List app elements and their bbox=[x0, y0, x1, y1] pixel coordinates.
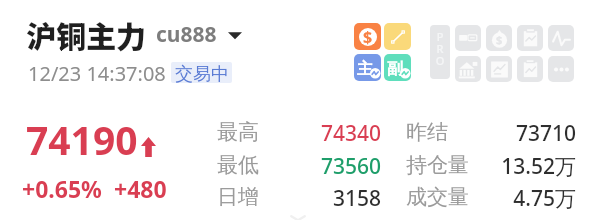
button[interactable]: Money flow bbox=[486, 25, 512, 51]
staticText: 最低 bbox=[217, 152, 259, 178]
staticText: 成交量 bbox=[406, 184, 469, 210]
button[interactable]: Funds bbox=[354, 23, 381, 50]
button[interactable]: Switch contract bbox=[225, 25, 245, 45]
button[interactable]: Main contract bbox=[354, 54, 381, 81]
staticText: 13.52万 bbox=[406, 152, 576, 181]
staticText: 昨结 bbox=[406, 119, 448, 145]
staticText: 持仓量 bbox=[406, 152, 469, 178]
staticText: 最高 bbox=[217, 119, 259, 145]
button[interactable]: Analysis bbox=[486, 56, 512, 82]
staticText: P bbox=[430, 29, 450, 44]
staticText: 主 bbox=[357, 59, 373, 79]
button[interactable]: PRO bbox=[430, 25, 450, 79]
staticText: 副 bbox=[387, 59, 403, 79]
button[interactable]: Sub contract bbox=[384, 54, 411, 81]
button[interactable]: More bbox=[548, 56, 574, 82]
button[interactable]: 交易中 bbox=[171, 62, 232, 83]
staticText: $ bbox=[496, 32, 503, 47]
staticText: R bbox=[430, 41, 450, 56]
staticText: O bbox=[430, 53, 450, 68]
staticText: 74190 bbox=[26, 113, 138, 166]
staticText: 74340 bbox=[217, 119, 381, 148]
staticText: 3158 bbox=[217, 184, 381, 213]
button[interactable]: Trend line bbox=[384, 23, 411, 50]
staticText: $ bbox=[363, 26, 373, 46]
staticText: 4.75万 bbox=[406, 184, 576, 213]
staticText: +480 bbox=[114, 173, 167, 204]
button[interactable]: Institutions bbox=[455, 56, 481, 82]
staticText: 12/23 14:37:08 bbox=[28, 60, 166, 87]
staticText: 73710 bbox=[406, 119, 576, 148]
staticText: 交易中 bbox=[175, 63, 229, 83]
button[interactable]: News chart bbox=[517, 56, 543, 82]
staticText: cu888 bbox=[156, 20, 217, 49]
staticText: 日增 bbox=[217, 184, 259, 210]
staticText: 73560 bbox=[217, 152, 381, 181]
staticText: +0.65% bbox=[22, 173, 102, 204]
button[interactable]: Volatility bbox=[548, 25, 574, 51]
staticText: 沪铜主力 bbox=[26, 13, 146, 56]
button[interactable]: Expand bbox=[286, 208, 310, 220]
button[interactable]: Report bbox=[517, 25, 543, 51]
button[interactable]: Cards bbox=[455, 25, 481, 51]
